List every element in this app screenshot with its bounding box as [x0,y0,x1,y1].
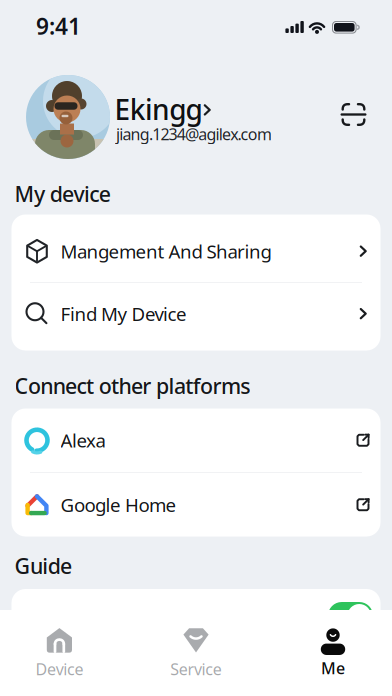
button[interactable]: Mangement And Sharing [11,220,380,282]
staticText: Find My Device [60,301,187,326]
staticText: Guide [14,551,72,580]
staticText: Me [321,657,345,679]
button[interactable]: Alexa [11,408,380,472]
staticText: Alexa [60,428,105,453]
staticText: Connect other platforms [14,371,250,400]
button[interactable]: Scan [333,95,373,134]
staticText: Ekingg [114,90,202,128]
staticText: Google Home [60,492,176,517]
button[interactable]: Ekingg [0,0,300,170]
button[interactable]: Service [141,626,251,680]
button[interactable]: Me [278,626,388,680]
staticText: 9:41 [36,11,81,41]
button[interactable]: Device [4,626,114,680]
staticText: Service [170,658,222,680]
button[interactable]: Toggle [328,602,373,629]
staticText: Device [35,658,83,680]
staticText: Mangement And Sharing [60,239,271,264]
button[interactable]: Google Home [11,473,380,536]
staticText: My device [14,179,111,208]
button[interactable]: Find My Device [11,283,380,344]
staticText: jiang.1234@agilex.com [116,123,272,145]
